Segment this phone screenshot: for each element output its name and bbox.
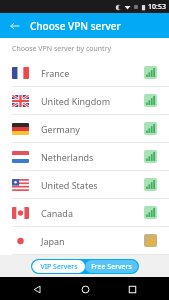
staticText: Germany	[41, 123, 80, 135]
staticText: Choose VPN server	[30, 19, 121, 33]
staticText: 10:53	[148, 2, 166, 12]
staticText: United States	[41, 179, 98, 191]
button[interactable]: Japan	[0, 227, 169, 255]
button[interactable]: Germany	[0, 115, 169, 143]
button[interactable]: Back	[26, 278, 48, 300]
staticText: United Kingdom	[41, 95, 111, 107]
staticText: Free Servers	[91, 262, 132, 272]
button[interactable]: Canada	[0, 199, 169, 227]
button[interactable]: United States	[0, 171, 169, 199]
button[interactable]: Home	[74, 278, 96, 300]
staticText: Netherlands	[41, 151, 94, 163]
staticText: VIP Servers	[40, 262, 78, 272]
button[interactable]: Netherlands	[0, 143, 169, 171]
staticText: Japan	[41, 235, 65, 247]
button[interactable]: VIP Servers	[32, 260, 85, 273]
button[interactable]: United Kingdom	[0, 87, 169, 115]
staticText: Canada	[41, 207, 73, 219]
staticText: Choose VPN server by country	[12, 44, 112, 54]
staticText: France	[41, 67, 70, 79]
button[interactable]: Free Servers	[85, 260, 138, 273]
button[interactable]: Back	[6, 17, 24, 35]
button[interactable]: France	[0, 59, 169, 87]
button[interactable]: Recent apps	[121, 278, 143, 300]
